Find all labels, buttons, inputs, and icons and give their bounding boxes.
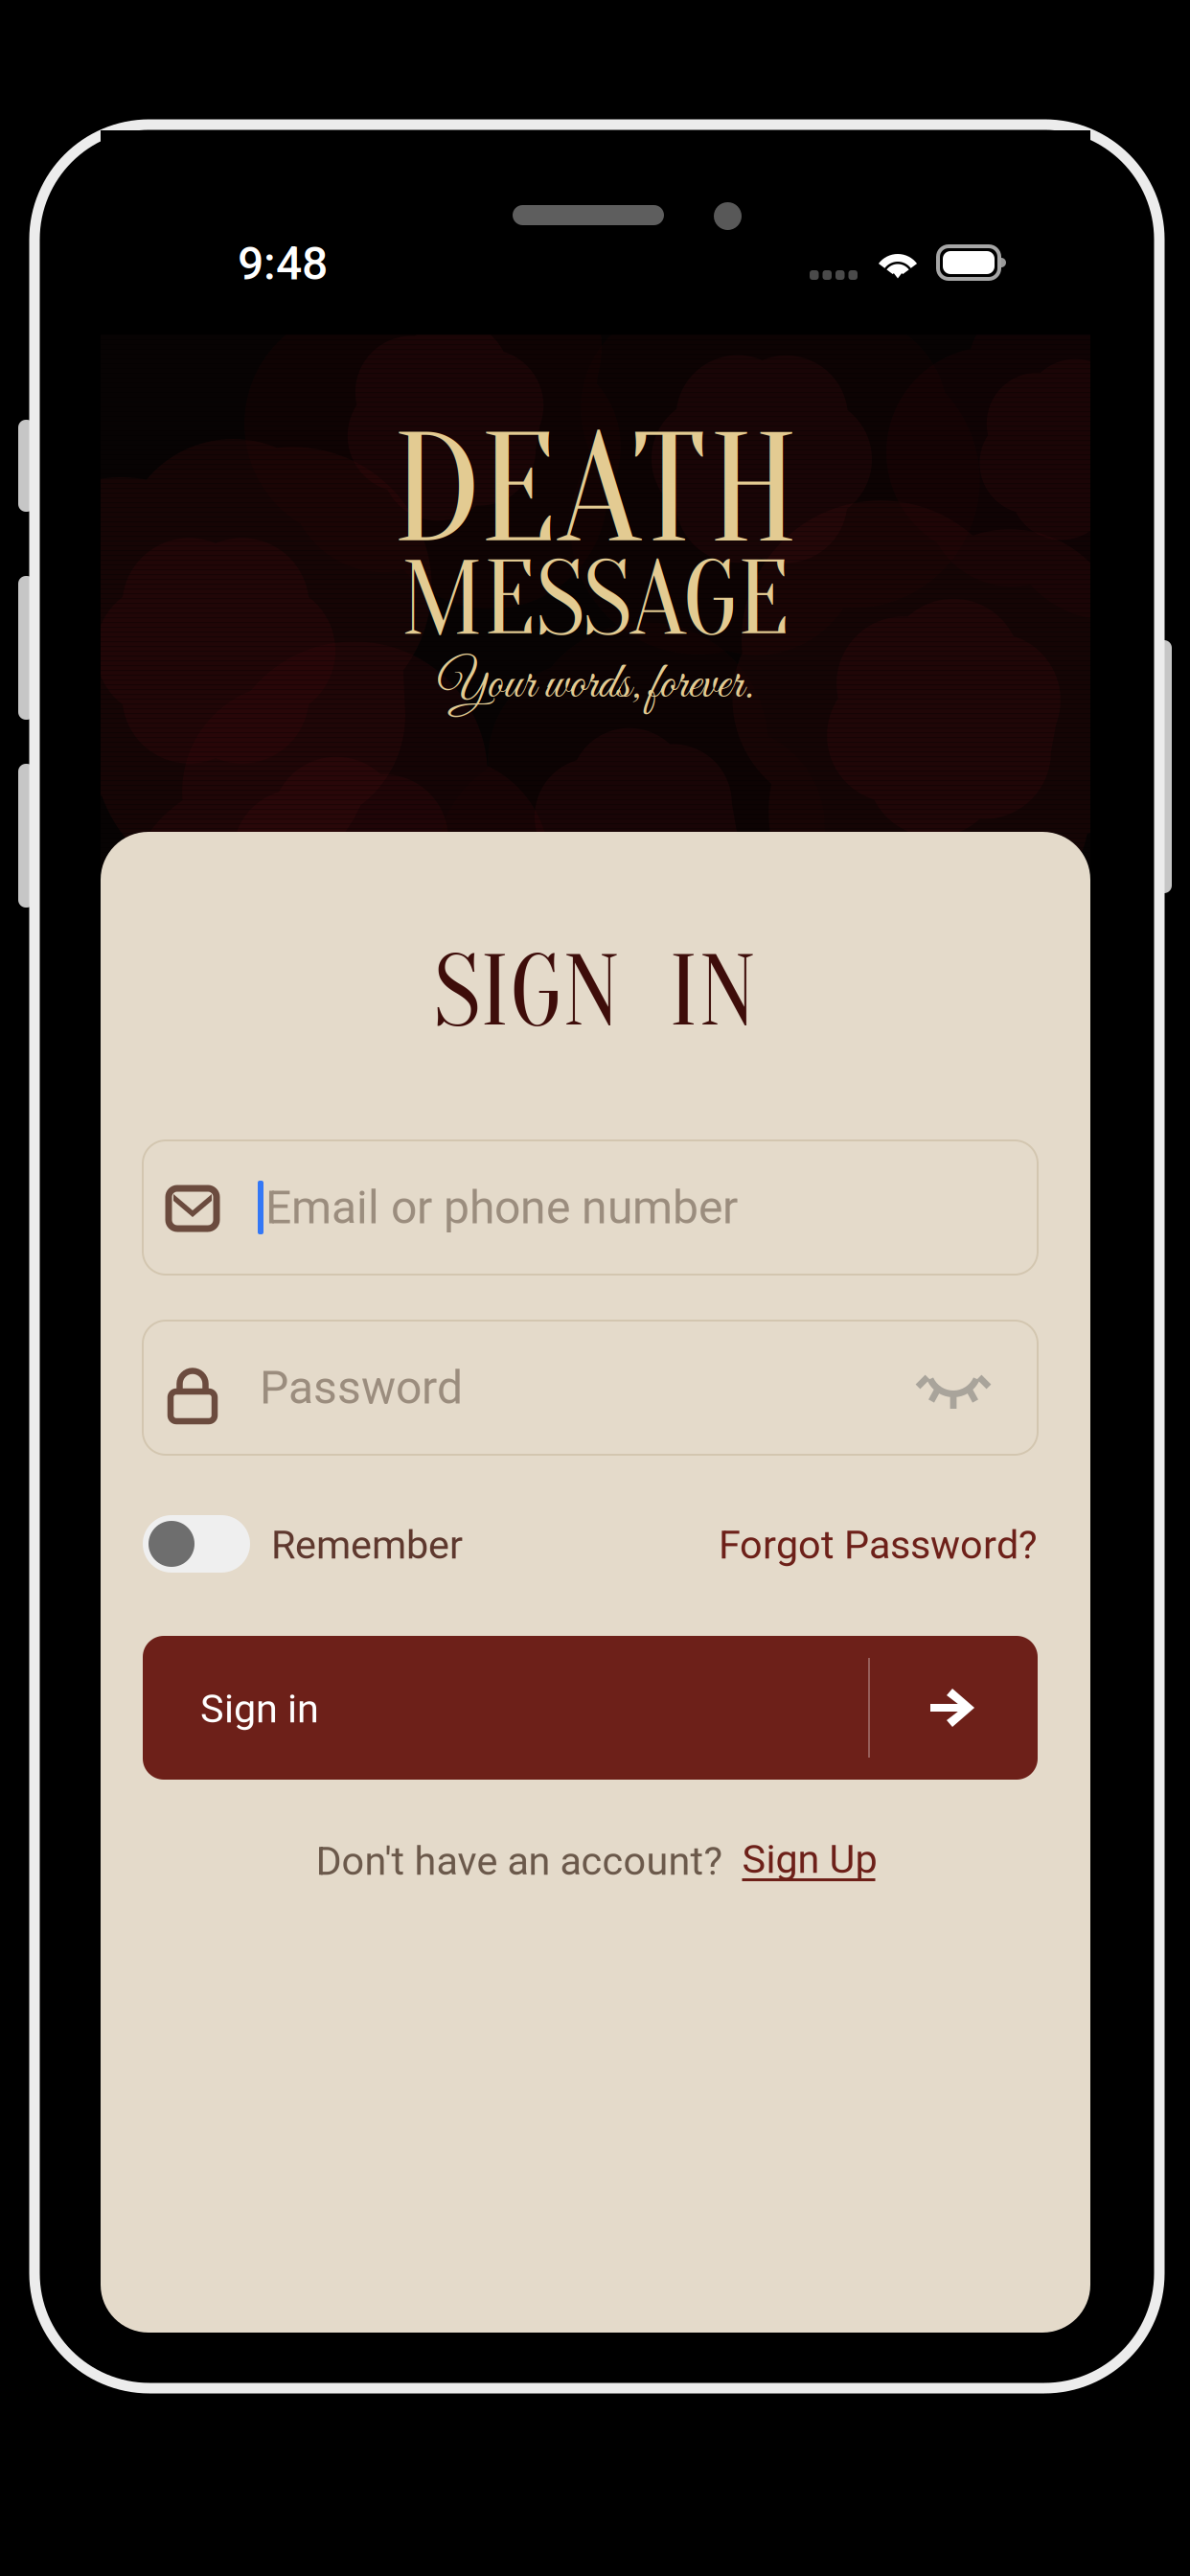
staticText: MESSAGE xyxy=(401,539,790,660)
staticText: Sign Up xyxy=(742,1836,877,1882)
staticText: Email or phone number xyxy=(265,1181,738,1234)
button[interactable]: Remember me xyxy=(143,1515,250,1573)
staticText: 9:48 xyxy=(238,237,328,290)
button[interactable]: Sign in xyxy=(143,1636,1038,1780)
button[interactable]: Sign Up xyxy=(742,1838,875,1884)
staticText: Don't have an account? xyxy=(316,1838,723,1884)
staticText: Sign in xyxy=(200,1686,319,1732)
staticText: Password xyxy=(260,1361,463,1415)
staticText: Forgot Password? xyxy=(719,1522,1038,1568)
button[interactable]: Show password xyxy=(917,1357,990,1422)
staticText: DEATH xyxy=(392,401,799,581)
staticText: SIGN IN xyxy=(434,935,757,1050)
staticText: Your words, forever. xyxy=(437,653,754,717)
button[interactable]: Forgot Password? xyxy=(626,1516,1038,1574)
staticText: Remember xyxy=(271,1522,463,1568)
